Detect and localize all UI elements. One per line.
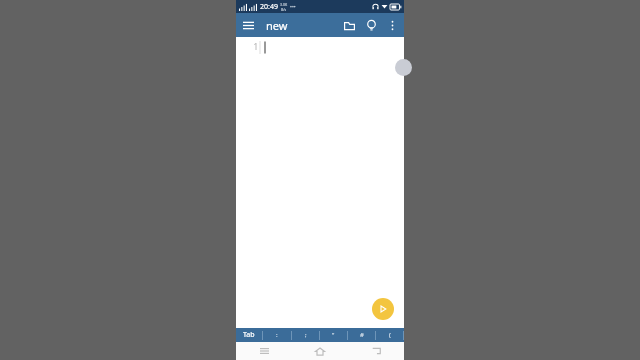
button[interactable]: ( [376, 328, 403, 342]
button[interactable]: Open folder [338, 14, 360, 36]
button[interactable]: Hints [360, 14, 382, 36]
button[interactable]: Home [292, 342, 348, 360]
staticText: ; [305, 331, 307, 339]
button[interactable]: 1 [236, 37, 404, 328]
button[interactable]: Run [372, 298, 394, 320]
staticText: ( [389, 331, 391, 339]
button[interactable]: ; [292, 328, 319, 342]
button[interactable]: Back [348, 342, 404, 360]
staticText: B/s [281, 7, 287, 12]
staticText: # [360, 331, 364, 339]
staticText: : [276, 331, 278, 339]
staticText: " [332, 331, 335, 339]
staticText: 3.0K [280, 2, 288, 7]
button[interactable]: # [348, 328, 375, 342]
button[interactable]: " [320, 328, 347, 342]
staticText: new [266, 18, 288, 33]
staticText: 20:49 [260, 2, 278, 12]
button[interactable]: More options [382, 15, 402, 35]
staticText: 1 [253, 41, 258, 52]
button[interactable]: Open navigation drawer [236, 13, 260, 37]
staticText: ••• [290, 4, 296, 11]
button[interactable]: Tab [236, 328, 262, 342]
button[interactable]: Recent apps [236, 342, 292, 360]
staticText: Tab [243, 330, 255, 340]
button[interactable]: : [263, 328, 291, 342]
